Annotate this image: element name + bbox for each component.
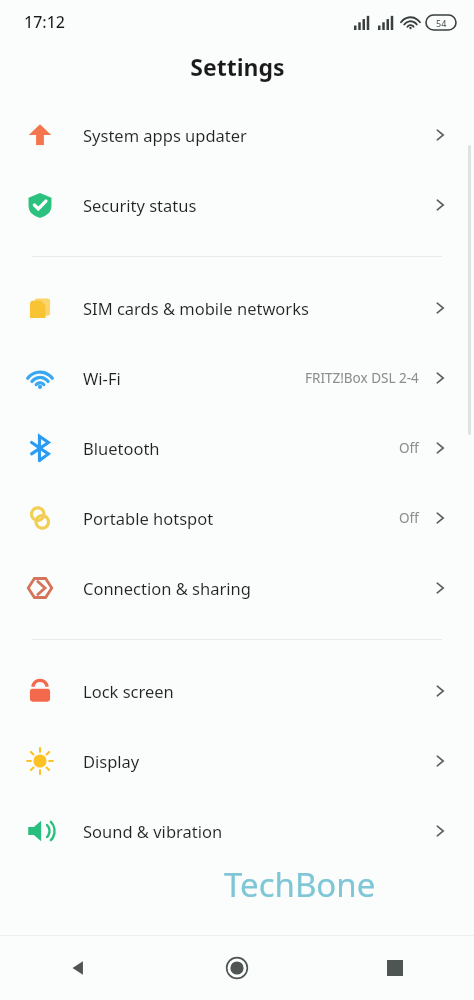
button[interactable]: Home	[158, 936, 316, 1000]
button[interactable]: Bluetooth	[0, 413, 474, 483]
staticText: Settings	[190, 51, 285, 82]
staticText: TechBone	[224, 862, 376, 907]
staticText: 17:12	[24, 11, 65, 33]
button[interactable]: Recents	[316, 936, 474, 1000]
staticText: SIM cards & mobile networks	[83, 297, 309, 319]
staticText: Off	[399, 509, 419, 527]
button[interactable]: Security status	[0, 170, 474, 240]
button[interactable]: Wi-Fi	[0, 343, 474, 413]
button[interactable]: System apps updater	[0, 100, 474, 170]
staticText: Sound & vibration	[83, 820, 223, 842]
button[interactable]: Back	[0, 936, 158, 1000]
staticText: Portable hotspot	[83, 507, 214, 529]
staticText: FRITZ!Box DSL 2-4	[305, 369, 419, 387]
staticText: Display	[83, 750, 140, 772]
staticText: Lock screen	[83, 680, 174, 702]
button[interactable]: Connection & sharing	[0, 553, 474, 623]
staticText: 54	[436, 17, 447, 29]
button[interactable]: Sound & vibration	[0, 796, 474, 866]
staticText: Connection & sharing	[83, 577, 251, 599]
button[interactable]: Portable hotspot	[0, 483, 474, 553]
button[interactable]: Lock screen	[0, 656, 474, 726]
staticText: Bluetooth	[83, 437, 160, 459]
staticText: Off	[399, 439, 419, 457]
staticText: Wi-Fi	[83, 367, 121, 389]
staticText: System apps updater	[83, 124, 247, 146]
button[interactable]: Display	[0, 726, 474, 796]
staticText: Security status	[83, 194, 197, 216]
button[interactable]: SIM cards & mobile networks	[0, 273, 474, 343]
